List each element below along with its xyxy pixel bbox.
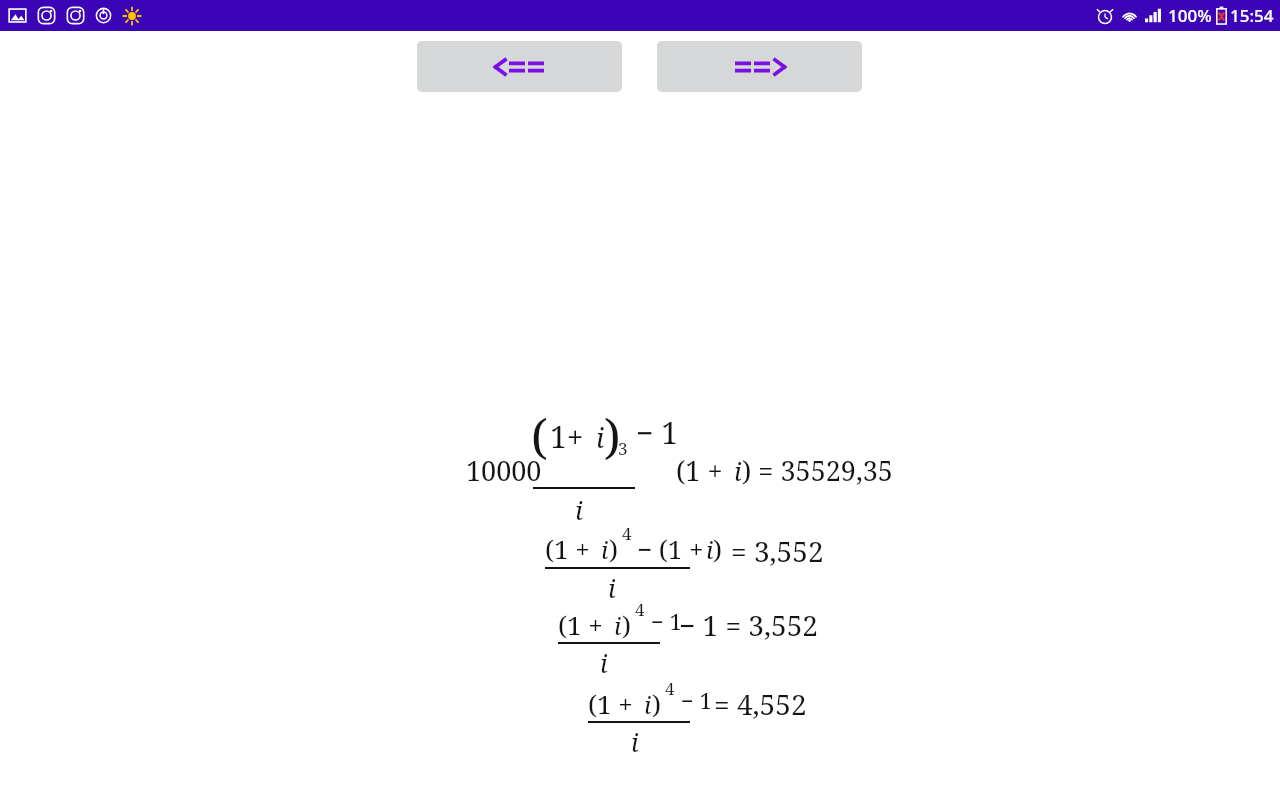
staticText: i [706,533,714,566]
staticText: ( [531,403,548,468]
staticText: 1+ [550,416,584,457]
staticText: ) [604,403,621,468]
staticText: − 1 = 3,552 [679,606,818,644]
staticText: ) [609,531,618,566]
staticText: i [600,646,608,680]
staticText: (1 + [588,686,640,721]
staticText: ) = 35529,35 [742,452,893,489]
staticText: 10000 [466,452,542,489]
staticText: = 4,552 [714,685,807,723]
staticText: − (1 + [637,531,711,566]
staticText: − 1 [651,606,682,636]
staticText: i [601,533,609,566]
staticText: (1 + [545,531,597,566]
staticText: ) [622,607,631,642]
staticText: 3 [618,437,628,460]
staticText: i [734,454,742,488]
staticText: 4 [635,598,645,621]
staticText: i [575,492,583,527]
staticText: (1 + [558,607,610,642]
staticText: ) [652,686,661,721]
staticText: 4 [665,677,675,700]
staticText: = 3,552 [731,532,824,570]
staticText: i [631,725,639,759]
staticText: − 1 [681,685,712,715]
staticText: 15:54 [1230,4,1274,27]
staticText: 4 [622,522,632,545]
staticText: 100% [1168,4,1212,27]
staticText: i [608,571,616,605]
staticText: i [644,688,652,721]
button[interactable]: Next [657,41,862,92]
staticText: ) [713,531,722,566]
staticText: − 1 [636,412,678,453]
staticText: i [614,609,622,642]
staticText: (1 + [676,452,730,489]
staticText: i [596,419,605,456]
button[interactable]: Previous [417,41,622,92]
